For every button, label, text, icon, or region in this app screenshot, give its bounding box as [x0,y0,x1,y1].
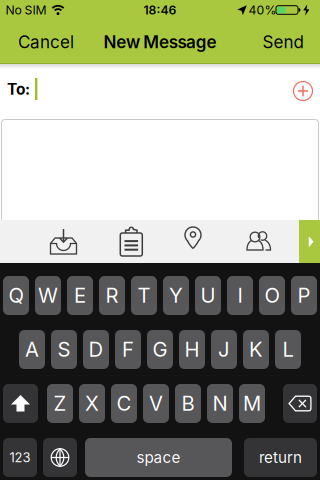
button[interactable] [283,384,317,423]
staticText: No SIM [5,3,46,17]
staticText: E [74,283,86,308]
staticText: M [243,391,261,416]
staticText: A [25,337,39,362]
button[interactable]: Z [47,384,73,423]
staticText: X [85,391,99,416]
button[interactable]: T [131,276,157,315]
staticText: N [212,391,227,416]
staticText: D [88,337,103,362]
button[interactable]: C [111,384,137,423]
button[interactable]: F [115,330,141,369]
button[interactable] [43,438,77,477]
button[interactable]: A [19,330,45,369]
button[interactable]: L [275,330,301,369]
button[interactable] [3,384,38,423]
staticText: To: [7,80,30,98]
button[interactable] [299,220,320,263]
staticText: V [149,391,163,416]
button[interactable]: Cancel [8,20,84,63]
staticText: C [116,391,131,416]
button[interactable]: B [175,384,201,423]
staticText: K [249,337,263,362]
staticText: Send [262,32,303,52]
button[interactable]: O [259,276,285,315]
button[interactable]: Send [250,20,316,63]
button[interactable]: D [83,330,109,369]
button[interactable]: V [143,384,169,423]
staticText: F [122,337,134,362]
staticText: 123 [9,450,30,465]
staticText: J [218,337,230,362]
staticText: I [237,283,242,308]
button[interactable]: W [35,276,61,315]
staticText: O [264,283,279,308]
button[interactable]: J [211,330,237,369]
staticText: L [282,337,293,362]
button[interactable]: Q [3,276,29,315]
button[interactable] [288,76,318,106]
staticText: S [57,337,70,362]
staticText: B [181,391,194,416]
button[interactable]: 123 [3,438,37,477]
button[interactable] [41,220,85,262]
staticText: space [136,448,180,467]
staticText: Cancel [18,32,74,52]
button[interactable]: P [291,276,317,315]
staticText: R [105,283,118,308]
staticText: 18:46 [143,3,176,17]
button[interactable]: R [99,276,125,315]
staticText: H [184,337,199,362]
staticText: W [38,283,58,308]
staticText: P [297,283,310,308]
staticText: 40% [248,3,276,17]
staticText: Y [169,283,183,308]
button[interactable] [111,220,151,262]
staticText: Q [8,283,23,308]
button[interactable]: X [79,384,105,423]
button[interactable]: I [227,276,253,315]
staticText: T [137,283,150,308]
button[interactable]: S [51,330,77,369]
button[interactable]: E [67,276,93,315]
button[interactable]: H [179,330,205,369]
staticText: New Message [103,32,216,52]
button[interactable] [236,220,280,263]
staticText: G [152,337,167,362]
button[interactable]: M [239,384,265,423]
button[interactable]: U [195,276,221,315]
staticText: U [200,283,215,308]
button[interactable]: space [85,438,232,477]
button[interactable]: N [207,384,233,423]
staticText: Z [53,391,66,416]
staticText: return [259,448,302,467]
button[interactable]: return [244,438,317,477]
button[interactable]: K [243,330,269,369]
button[interactable]: G [147,330,173,369]
button[interactable] [175,219,211,262]
button[interactable]: Y [163,276,189,315]
